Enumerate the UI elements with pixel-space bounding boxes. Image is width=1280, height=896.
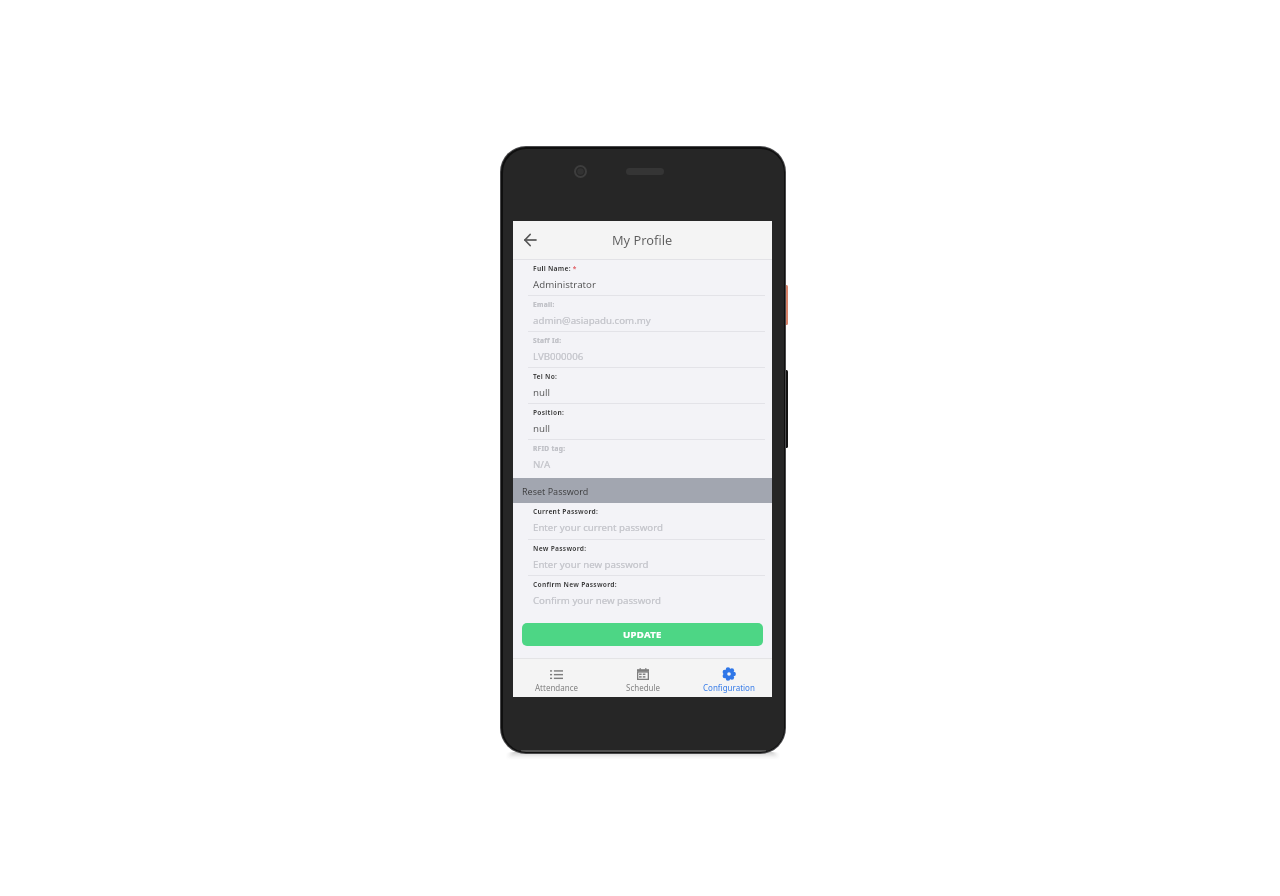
staticText: Administrator [533, 278, 596, 291]
staticText: Reset Password [522, 485, 589, 497]
staticText: New Password: [533, 544, 587, 553]
staticText: Confirm your new password [533, 594, 661, 607]
staticText: Configuration [703, 682, 755, 693]
button[interactable]: Email: [513, 296, 772, 332]
staticText: Enter your new password [533, 558, 649, 571]
button[interactable]: Staff Id: [513, 332, 772, 368]
staticText: N/A [533, 458, 551, 471]
staticText: Enter your current password [533, 521, 663, 534]
button[interactable]: Schedule [600, 659, 686, 697]
staticText: UPDATE [623, 628, 662, 641]
staticText: Email: [533, 300, 555, 309]
staticText: LVB000006 [533, 350, 584, 363]
button[interactable]: Current Password: [513, 503, 772, 540]
staticText: Attendance [535, 682, 579, 693]
button[interactable]: Full Name: [513, 260, 772, 296]
button[interactable]: Position: [513, 404, 772, 440]
staticText: * [571, 264, 577, 273]
staticText: Full Name: [533, 264, 571, 273]
staticText: admin@asiapadu.com.my [533, 314, 651, 327]
button[interactable]: Configuration [686, 659, 772, 697]
staticText: Staff Id: [533, 336, 562, 345]
button[interactable]: Tel No: [513, 368, 772, 404]
staticText: Tel No: [533, 372, 558, 381]
staticText: Confirm New Password: [533, 580, 617, 589]
button[interactable]: Attendance [513, 659, 600, 697]
button[interactable]: Back [520, 230, 540, 250]
staticText: My Profile [612, 231, 673, 248]
button[interactable]: UPDATE [522, 623, 763, 646]
button[interactable]: New Password: [513, 540, 772, 576]
staticText: Current Password: [533, 507, 599, 516]
button[interactable]: Reset Password [513, 478, 772, 503]
staticText: Position: [533, 408, 565, 417]
button[interactable]: Confirm New Password: [513, 576, 772, 612]
staticText: null [533, 422, 550, 435]
button[interactable]: RFID tag: [513, 440, 772, 476]
staticText: null [533, 386, 550, 399]
staticText: Schedule [626, 682, 661, 693]
staticText: RFID tag: [533, 444, 566, 453]
